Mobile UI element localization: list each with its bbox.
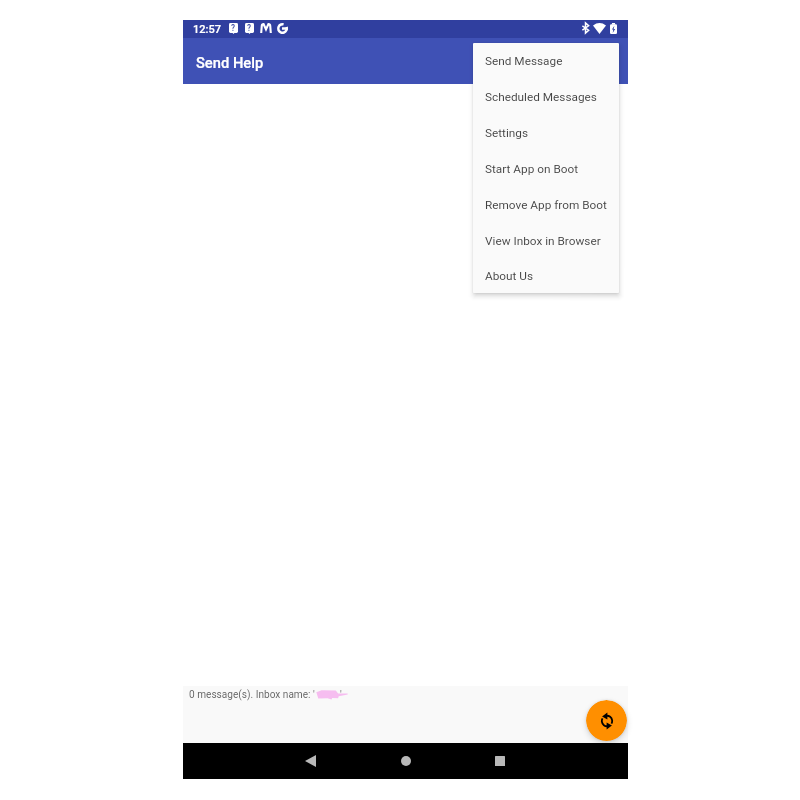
button[interactable]: Scheduled Messages [473,79,619,115]
staticText: 0 message(s). Inbox name: ' [189,689,315,701]
staticText: Settings [485,126,529,140]
button[interactable]: Send Message [473,43,619,79]
staticText: Remove App from Boot [485,198,607,212]
button[interactable]: View Inbox in Browser [473,223,619,259]
button[interactable]: About Us [473,259,619,293]
button[interactable]: Recent apps [483,744,517,778]
staticText: ' [340,689,342,701]
staticText: About Us [485,269,534,283]
button[interactable]: Settings [473,115,619,151]
button[interactable]: Remove App from Boot [473,187,619,223]
staticText: Send Message [485,54,563,68]
staticText: ? [231,23,236,33]
staticText: Scheduled Messages [485,90,597,104]
staticText: Start App on Boot [485,162,579,176]
button[interactable]: Back [293,744,327,778]
staticText: ? [247,23,252,33]
staticText: 12:57 [193,23,221,36]
staticText: View Inbox in Browser [485,234,601,248]
button[interactable]: Start App on Boot [473,151,619,187]
staticText: Send Help [196,54,264,71]
button[interactable]: Home [389,744,423,778]
button[interactable]: Refresh [586,700,627,741]
